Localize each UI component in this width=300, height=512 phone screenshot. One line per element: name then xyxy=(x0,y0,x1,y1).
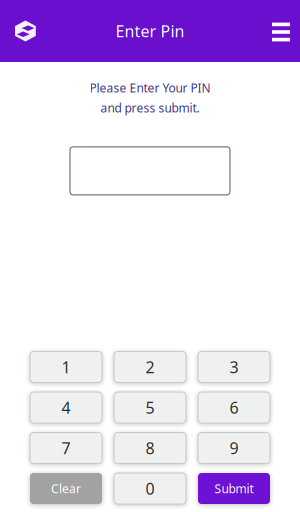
button[interactable]: Clear xyxy=(30,473,102,504)
staticText: Please Enter Your PIN xyxy=(89,80,210,96)
staticText: 5 xyxy=(145,397,154,418)
button[interactable]: 3 xyxy=(198,351,270,382)
staticText: 9 xyxy=(229,437,238,459)
button[interactable]: 8 xyxy=(114,432,186,463)
button[interactable]: 4 xyxy=(30,392,102,423)
staticText: 4 xyxy=(61,397,70,418)
button[interactable]: 9 xyxy=(198,432,270,463)
staticText: and press submit. xyxy=(100,100,199,116)
button[interactable]: Menu xyxy=(272,20,290,41)
button[interactable]: Submit xyxy=(198,473,270,504)
staticText: 1 xyxy=(61,356,70,378)
staticText: Enter Pin xyxy=(115,20,184,42)
staticText: 2 xyxy=(145,356,154,378)
staticText: Submit xyxy=(214,480,253,496)
button[interactable]: Home xyxy=(15,20,36,41)
button[interactable]: 6 xyxy=(198,392,270,423)
button[interactable]: 1 xyxy=(30,351,102,382)
staticText: Clear xyxy=(51,480,81,496)
staticText: 8 xyxy=(145,437,154,459)
button[interactable]: 7 xyxy=(30,432,102,463)
staticText: 6 xyxy=(229,397,238,418)
button[interactable]: 2 xyxy=(114,351,186,382)
button[interactable]: 0 xyxy=(114,473,186,504)
staticText: 7 xyxy=(61,437,70,459)
button[interactable]: 5 xyxy=(114,392,186,423)
staticText: 0 xyxy=(145,478,154,499)
button[interactable]: PIN field xyxy=(70,147,230,195)
staticText: 3 xyxy=(229,356,238,378)
